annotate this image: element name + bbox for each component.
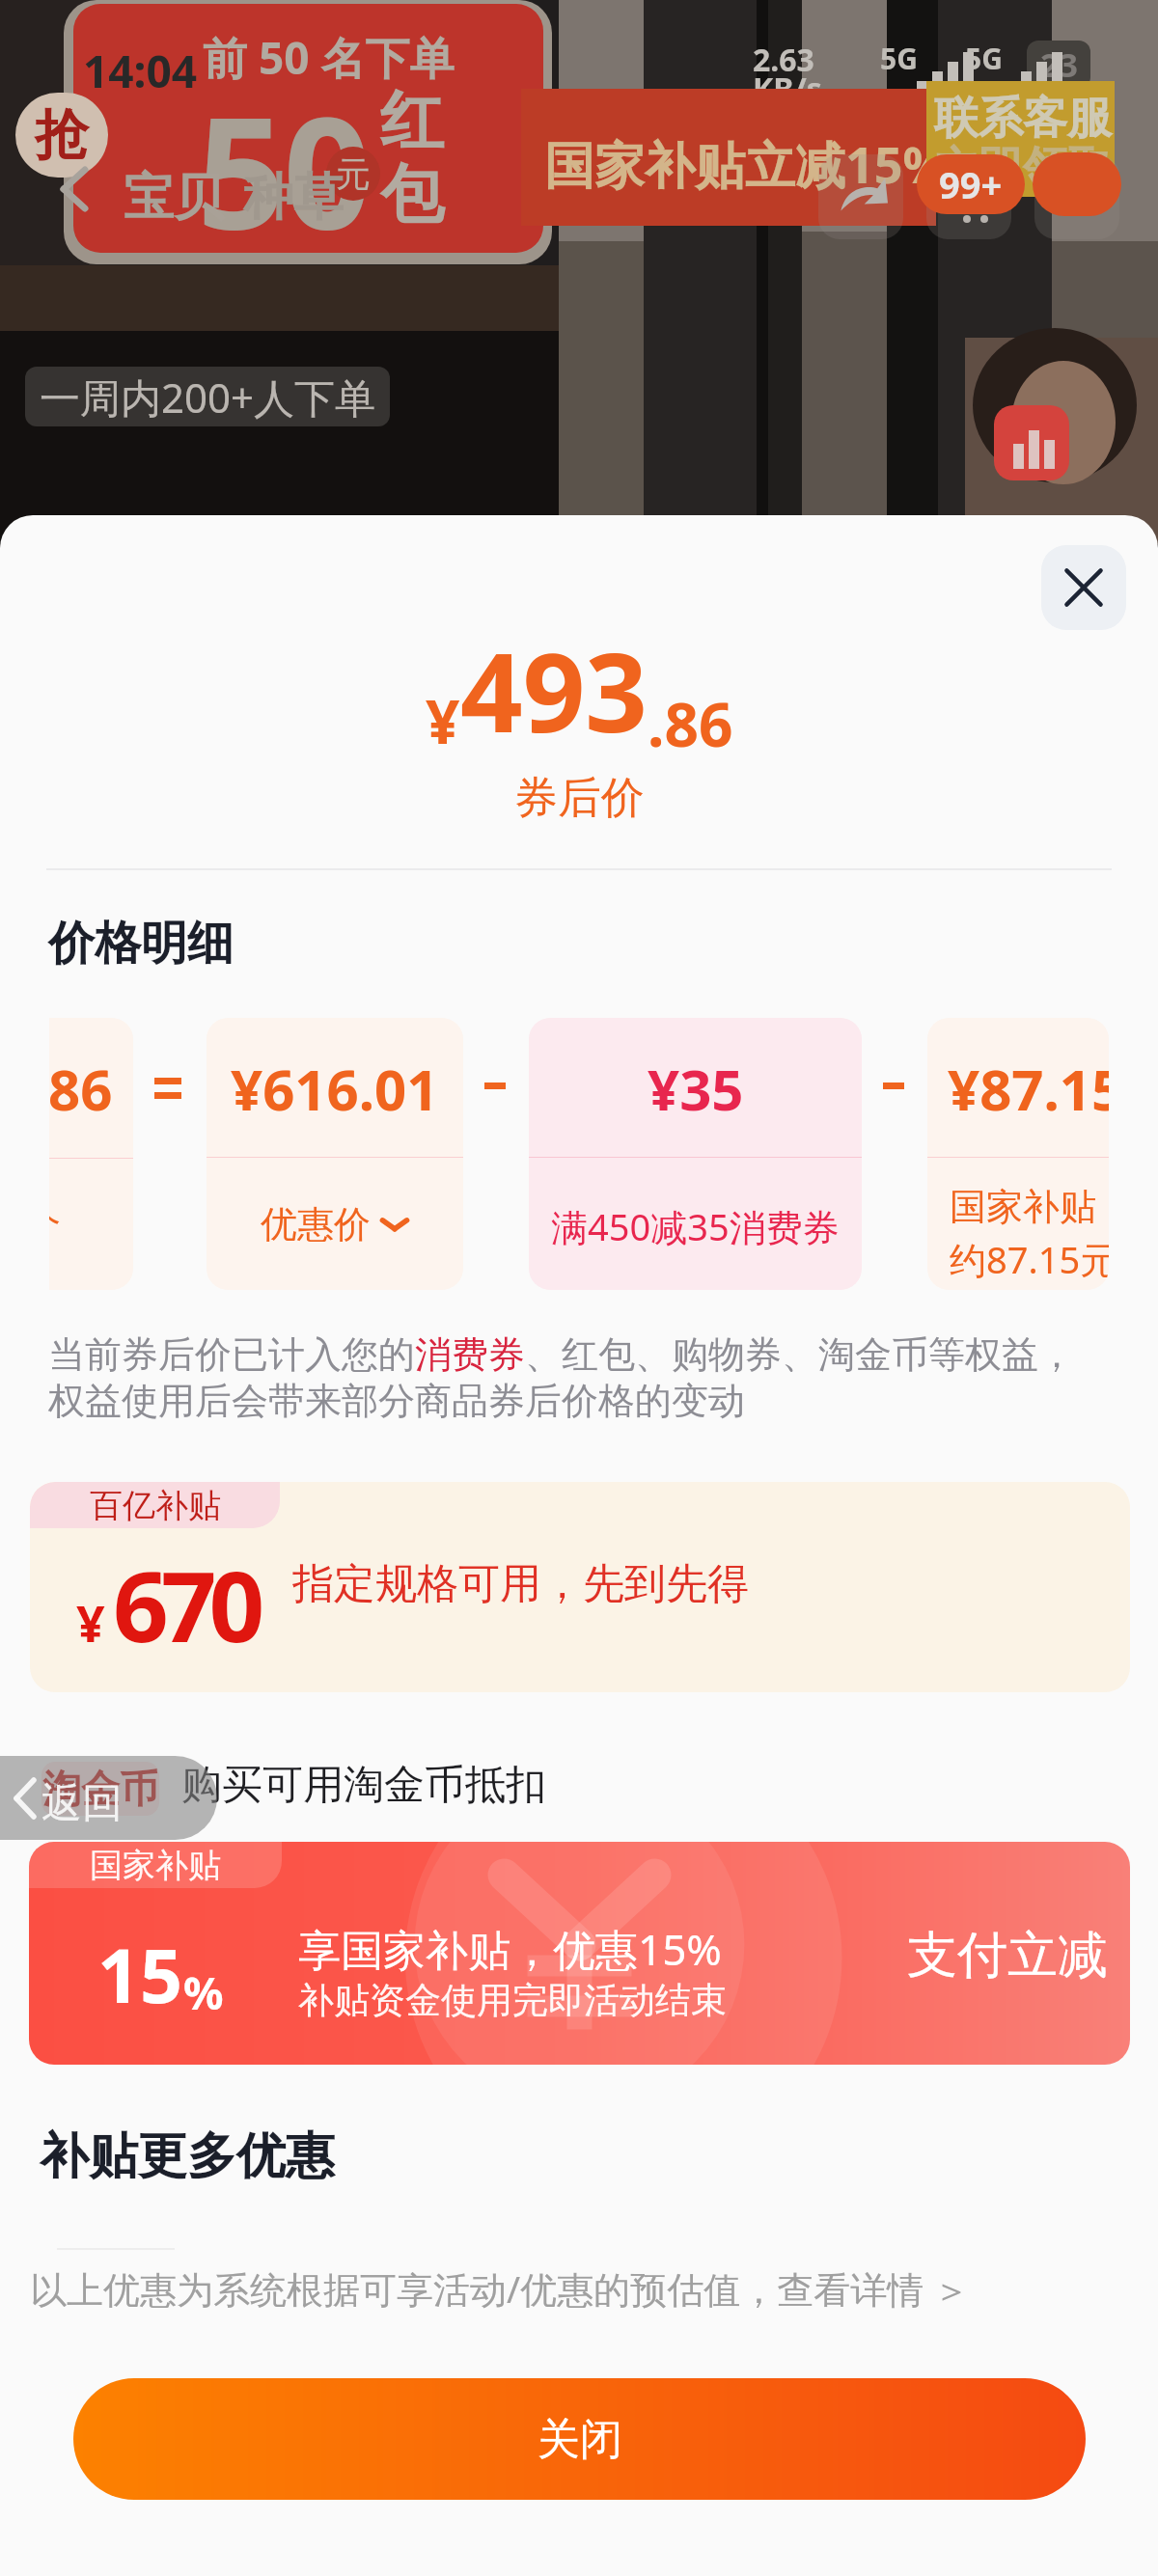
staticText: % [183,1962,224,2023]
staticText: .86 [648,683,733,764]
staticText: 以上优惠为系统根据可享活动/优惠的预估值，查看详情 ＞ [30,2263,971,2314]
staticText: 抢 [35,101,89,170]
staticText: 联系客服 [934,91,1112,147]
staticText: 返回 [41,1778,123,1829]
staticText: 86 [49,1051,113,1127]
staticText: ¥87.15 [948,1051,1109,1127]
staticText: 享国家补贴，优惠15% [298,1920,722,1978]
staticText: 包 [380,154,444,234]
staticText: ¥35 [648,1051,744,1127]
staticText: 立即领取 [934,141,1112,197]
button[interactable]: 百亿补贴 [30,1482,1130,1692]
staticText: 补贴资金使用完即活动结束 [298,1978,727,2023]
staticText: 权益使用后会带来部分商品券后价格的变动 [48,1378,745,1424]
staticText: 券后价 [514,771,645,826]
staticText: 当前券后价已计入您的消费券、红包、购物券、淘金币等权益， [48,1331,1075,1378]
staticText: 15 [97,1924,183,2025]
staticText: 购买可用淘金币抵扣 [181,1760,546,1811]
staticText: ¥ [76,1588,105,1657]
staticText: 670 [113,1538,258,1671]
staticText: ¥ [426,680,460,761]
staticText: 国家补贴 [950,1184,1096,1230]
staticText: 约87.15元 [950,1234,1109,1284]
staticText: 5G [965,39,1003,78]
button[interactable]: ¥616.01 [207,1018,463,1290]
staticText: 补贴更多优惠 [40,2125,335,2187]
button[interactable]: ¥35 [529,1018,862,1290]
staticText: 红 [380,81,444,161]
staticText: 14:04 [83,41,198,101]
staticText: 种草 [243,166,344,230]
staticText: 前 50 名下单 [203,27,455,88]
button[interactable]: 国家补贴 [29,1842,1130,2065]
staticText: 淘金币 [42,1765,158,1813]
staticText: 元 [336,152,371,196]
staticText: 5G [880,39,918,78]
staticText: 关闭 [538,2413,622,2466]
staticText: 宝贝 [124,166,224,230]
staticText: 支付立减 [907,1924,1108,1987]
staticText: 50 [197,64,371,253]
button[interactable]: Back [0,1756,217,1840]
staticText: 满450减35消费券 [551,1201,840,1251]
staticText: 优惠价 [261,1201,371,1247]
staticText: 指定规格可用，先到先得 [292,1558,749,1610]
staticText: 99+ [939,159,1003,209]
staticText: 23 [1040,42,1078,87]
staticText: 2.63 [753,39,814,81]
staticText: 个 [49,1201,61,1247]
staticText: 一周内200+人下单 [40,370,376,425]
staticText: 百亿补贴 [90,1485,221,1526]
staticText: 国家补贴立减15% [544,129,949,198]
staticText: 价格明细 [48,915,234,973]
button[interactable]: Close [1041,545,1126,630]
button[interactable]: 关闭 [73,2378,1086,2500]
staticText: 国家补贴 [90,1845,221,1886]
staticText: KB/s [753,68,822,110]
staticText: 493 [460,616,648,764]
staticText: ¥616.01 [231,1051,439,1127]
